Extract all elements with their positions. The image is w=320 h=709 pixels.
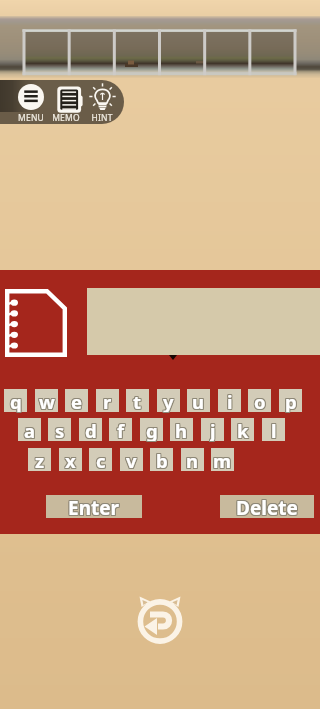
staticText: y [163,388,174,411]
staticText: j [211,419,217,442]
staticText: f [116,419,124,442]
staticText: MEMO [48,112,84,123]
staticText: c [96,447,106,470]
staticText: p [286,388,298,411]
staticText: w [40,390,56,413]
button[interactable]: Delete [220,495,314,518]
button[interactable]: m [211,448,234,471]
staticText: w [40,388,56,411]
staticText: b [156,449,168,472]
staticText: k [236,419,248,442]
staticText: z [34,447,44,470]
staticText: y [163,390,174,413]
button[interactable]: z [28,448,51,471]
staticText: x [65,448,76,471]
button[interactable]: o [248,389,271,412]
staticText: e [71,390,83,413]
staticText: q [9,388,21,411]
staticText: n [185,448,198,471]
staticText: u [193,388,206,411]
button[interactable]: MENU [13,81,49,123]
staticText: i [227,390,233,413]
staticText: q [10,388,22,411]
button[interactable]: h [170,418,193,441]
staticText: o [253,389,265,412]
button[interactable]: q [4,389,27,412]
button[interactable]: f [109,418,132,441]
staticText: q [11,388,23,411]
staticText: Delete [236,494,298,517]
button[interactable]: t [126,389,149,412]
staticText: g [146,419,158,442]
staticText: x [66,448,77,471]
staticText: e [72,389,84,412]
staticText: g [147,418,159,441]
staticText: v [127,448,138,471]
staticText: m [212,447,231,470]
staticText: q [9,389,21,412]
button[interactable]: c [89,448,112,471]
button[interactable]: a [18,418,41,441]
button[interactable]: k [231,418,254,441]
staticText: Delete [237,495,299,518]
staticText: w [40,389,56,412]
button[interactable]: l [262,418,285,441]
button[interactable]: Enter [46,495,142,518]
button[interactable]: e [65,389,88,412]
staticText: c [97,448,107,471]
staticText: v [125,449,136,472]
button[interactable]: v [120,448,143,471]
button[interactable]: y [157,389,180,412]
staticText: y [162,389,173,412]
staticText: h [175,417,188,440]
staticText: f [117,418,125,441]
staticText: t [134,390,143,413]
staticText: i [227,388,233,411]
staticText: u [193,390,206,413]
staticText: k [238,418,250,441]
button[interactable]: MEMO [48,81,84,123]
button[interactable]: j [201,418,224,441]
button[interactable]: Memo [5,289,67,357]
button[interactable]: u [187,389,210,412]
button[interactable]: p [279,389,302,412]
button[interactable]: s [48,418,71,441]
staticText: Enter [67,496,119,519]
staticText: v [126,447,137,470]
staticText: Enter [68,495,120,518]
staticText: p [284,388,296,411]
button[interactable]: g [140,418,163,441]
staticText: e [71,388,83,411]
staticText: y [162,388,173,411]
button[interactable]: i [218,389,241,412]
staticText: s [55,417,65,440]
staticText: w [39,390,55,413]
staticText: f [118,419,126,442]
staticText: u [193,389,206,412]
staticText: d [86,418,98,441]
staticText: w [38,390,54,413]
button[interactable]: HINT [84,81,120,123]
button[interactable]: n [181,448,204,471]
staticText: h [176,417,189,440]
staticText: h [176,419,189,442]
staticText: z [34,448,44,471]
staticText: j [210,418,216,441]
staticText: m [213,447,232,470]
staticText: i [228,388,234,411]
button[interactable]: r [96,389,119,412]
staticText: h [174,417,187,440]
staticText: g [145,418,157,441]
button[interactable]: b [150,448,173,471]
button[interactable]: Back [134,594,188,648]
staticText: b [155,449,167,472]
staticText: MENU [13,112,49,123]
button[interactable]: x [59,448,82,471]
staticText: g [145,419,157,442]
button[interactable]: d [79,418,102,441]
button[interactable]: w [35,389,58,412]
staticText: t [134,389,143,412]
staticText: r [104,388,113,411]
staticText: b [155,447,167,470]
